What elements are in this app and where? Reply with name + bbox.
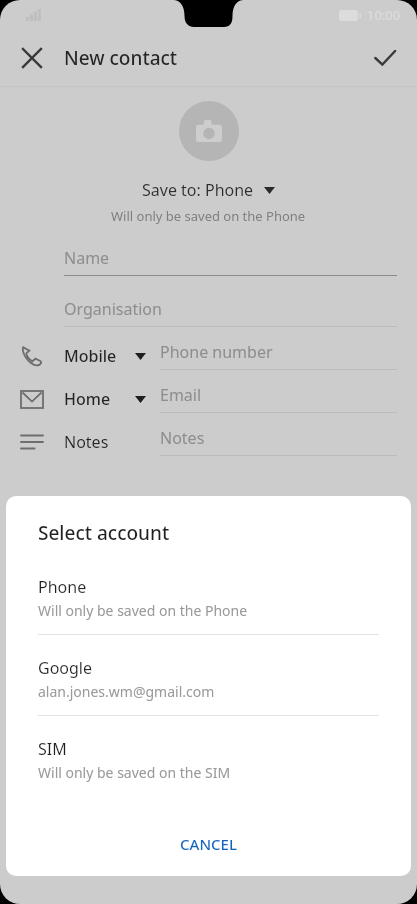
staticText: Home <box>64 388 111 410</box>
button[interactable]: Google <box>6 655 411 715</box>
staticText: Organisation <box>64 298 162 320</box>
button[interactable]: SIM <box>6 736 411 796</box>
staticText: CANCEL <box>180 834 237 854</box>
staticText: New contact <box>64 45 178 71</box>
button[interactable]: Close <box>12 38 52 78</box>
staticText: SIM <box>38 738 67 760</box>
staticText: Google <box>38 657 93 679</box>
staticText: Select account <box>38 520 170 546</box>
button[interactable]: Save to: Phone <box>136 177 281 203</box>
staticText: Mobile <box>64 345 117 367</box>
button[interactable]: Add photo <box>179 101 239 161</box>
staticText: Email <box>160 384 202 406</box>
staticText: Will only be saved on the SIM <box>38 763 231 782</box>
staticText: Notes <box>64 431 109 453</box>
staticText: 10:00 <box>367 6 401 24</box>
staticText: Name <box>64 247 110 269</box>
button[interactable]: Name <box>64 247 397 276</box>
button[interactable]: Notes <box>20 427 397 456</box>
button[interactable]: Save contact <box>365 38 405 78</box>
button[interactable]: Phone <box>6 574 411 634</box>
button[interactable]: Organisation <box>64 298 397 327</box>
button[interactable]: CANCEL <box>6 820 411 868</box>
staticText: Phone <box>38 576 87 598</box>
staticText: Phone number <box>160 341 273 363</box>
staticText: alan.jones.wm@gmail.com <box>38 682 215 701</box>
button[interactable]: Mobile <box>20 341 397 370</box>
staticText: Notes <box>160 427 205 449</box>
staticText: Will only be saved on the Phone <box>38 601 248 620</box>
staticText: Save to: Phone <box>142 179 254 201</box>
button[interactable]: Home <box>20 384 397 413</box>
staticText: Will only be saved on the Phone <box>111 207 306 225</box>
